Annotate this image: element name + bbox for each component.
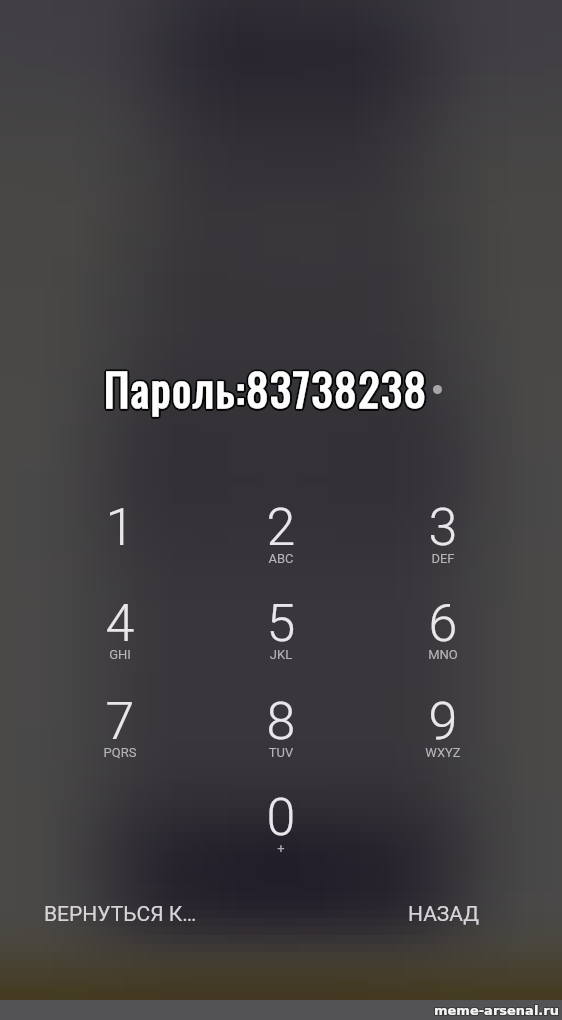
staticText: WXYZ — [388, 745, 498, 760]
staticText: GHI — [65, 647, 175, 662]
staticText: 1 — [65, 497, 175, 558]
staticText: DEF — [388, 551, 498, 566]
staticText: MNO — [388, 647, 498, 662]
button[interactable]: 6 — [388, 593, 498, 687]
button[interactable]: 9 — [388, 691, 498, 785]
staticText: Пароль:83738238 — [104, 357, 428, 423]
staticText: 6 — [388, 593, 498, 654]
staticText: PQRS — [65, 745, 175, 760]
staticText: Пароль:83738238 — [105, 354, 429, 420]
staticText: Пароль:83738238 — [105, 356, 429, 422]
button[interactable]: 5 — [226, 593, 336, 687]
staticText: meme-arsenal.ru — [433, 1002, 558, 1017]
staticText: НАЗАД — [408, 902, 480, 927]
staticText: Пароль:83738238 — [103, 354, 427, 420]
staticText: Пароль:83738238 — [103, 354, 427, 420]
staticText: meme-arsenal.ru — [435, 1003, 560, 1018]
button[interactable]: НАЗАД — [395, 893, 493, 936]
staticText: Пароль:83738238 — [106, 356, 430, 422]
button[interactable]: 7 — [65, 691, 175, 785]
staticText: 2 — [226, 497, 336, 558]
button[interactable]: 3 — [388, 497, 498, 591]
staticText: Пароль:83738238 — [106, 355, 430, 421]
button[interactable]: 0 — [226, 787, 336, 881]
staticText: Пароль:83738238 — [103, 356, 427, 422]
staticText: 3 — [388, 497, 498, 558]
staticText: JKL — [226, 647, 336, 662]
button[interactable]: 1 — [65, 497, 175, 591]
staticText: 9 — [388, 691, 498, 752]
staticText: Пароль:83738238 — [104, 353, 428, 419]
button[interactable]: ВЕРНУТЬСЯ К… — [31, 893, 210, 936]
staticText: meme-arsenal.ru — [435, 1004, 560, 1019]
staticText: Пароль:83738238 — [102, 355, 426, 421]
staticText: TUV — [226, 745, 336, 760]
staticText: ВЕРНУТЬСЯ К… — [44, 902, 197, 927]
staticText: Пароль:83738238 — [103, 354, 427, 420]
button[interactable]: 4 — [65, 593, 175, 687]
staticText: meme-arsenal.ru — [433, 1004, 558, 1019]
staticText: Пароль:83738238 — [105, 354, 429, 420]
staticText: meme-arsenal.ru — [434, 1002, 559, 1017]
staticText: 7 — [65, 691, 175, 752]
staticText: 4 — [65, 593, 175, 654]
staticText: Пароль:83738238 — [103, 356, 427, 422]
staticText: meme-arsenal.ru — [433, 1003, 558, 1018]
staticText: 0 — [226, 787, 336, 848]
staticText: 5 — [226, 593, 336, 654]
staticText: ABC — [226, 551, 336, 566]
button[interactable]: 8 — [226, 691, 336, 785]
staticText: Пароль:83738238 — [105, 357, 429, 423]
staticText: meme-arsenal.ru — [434, 1003, 559, 1018]
staticText: Пароль:83738238 — [103, 357, 427, 423]
button[interactable]: 2 — [226, 497, 336, 591]
staticText: meme-arsenal.ru — [435, 1002, 560, 1017]
staticText: 8 — [226, 691, 336, 752]
staticText: meme-arsenal.ru — [434, 1004, 559, 1019]
staticText: Пароль:83738238 — [106, 354, 430, 420]
staticText: + — [226, 841, 336, 856]
staticText: Пароль:83738238 — [104, 355, 428, 421]
